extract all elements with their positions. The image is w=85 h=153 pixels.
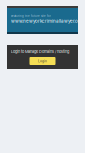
staticText: Login <box>38 59 47 63</box>
staticText: www.newyorkcriminallawyer.org <box>11 18 83 24</box>
button[interactable]: Login <box>29 57 55 65</box>
staticText: Login to Manage Domains / hosting <box>11 49 69 54</box>
button[interactable]: Featuring the future site for <box>7 6 78 34</box>
staticText: Featuring the future site for <box>11 14 51 18</box>
